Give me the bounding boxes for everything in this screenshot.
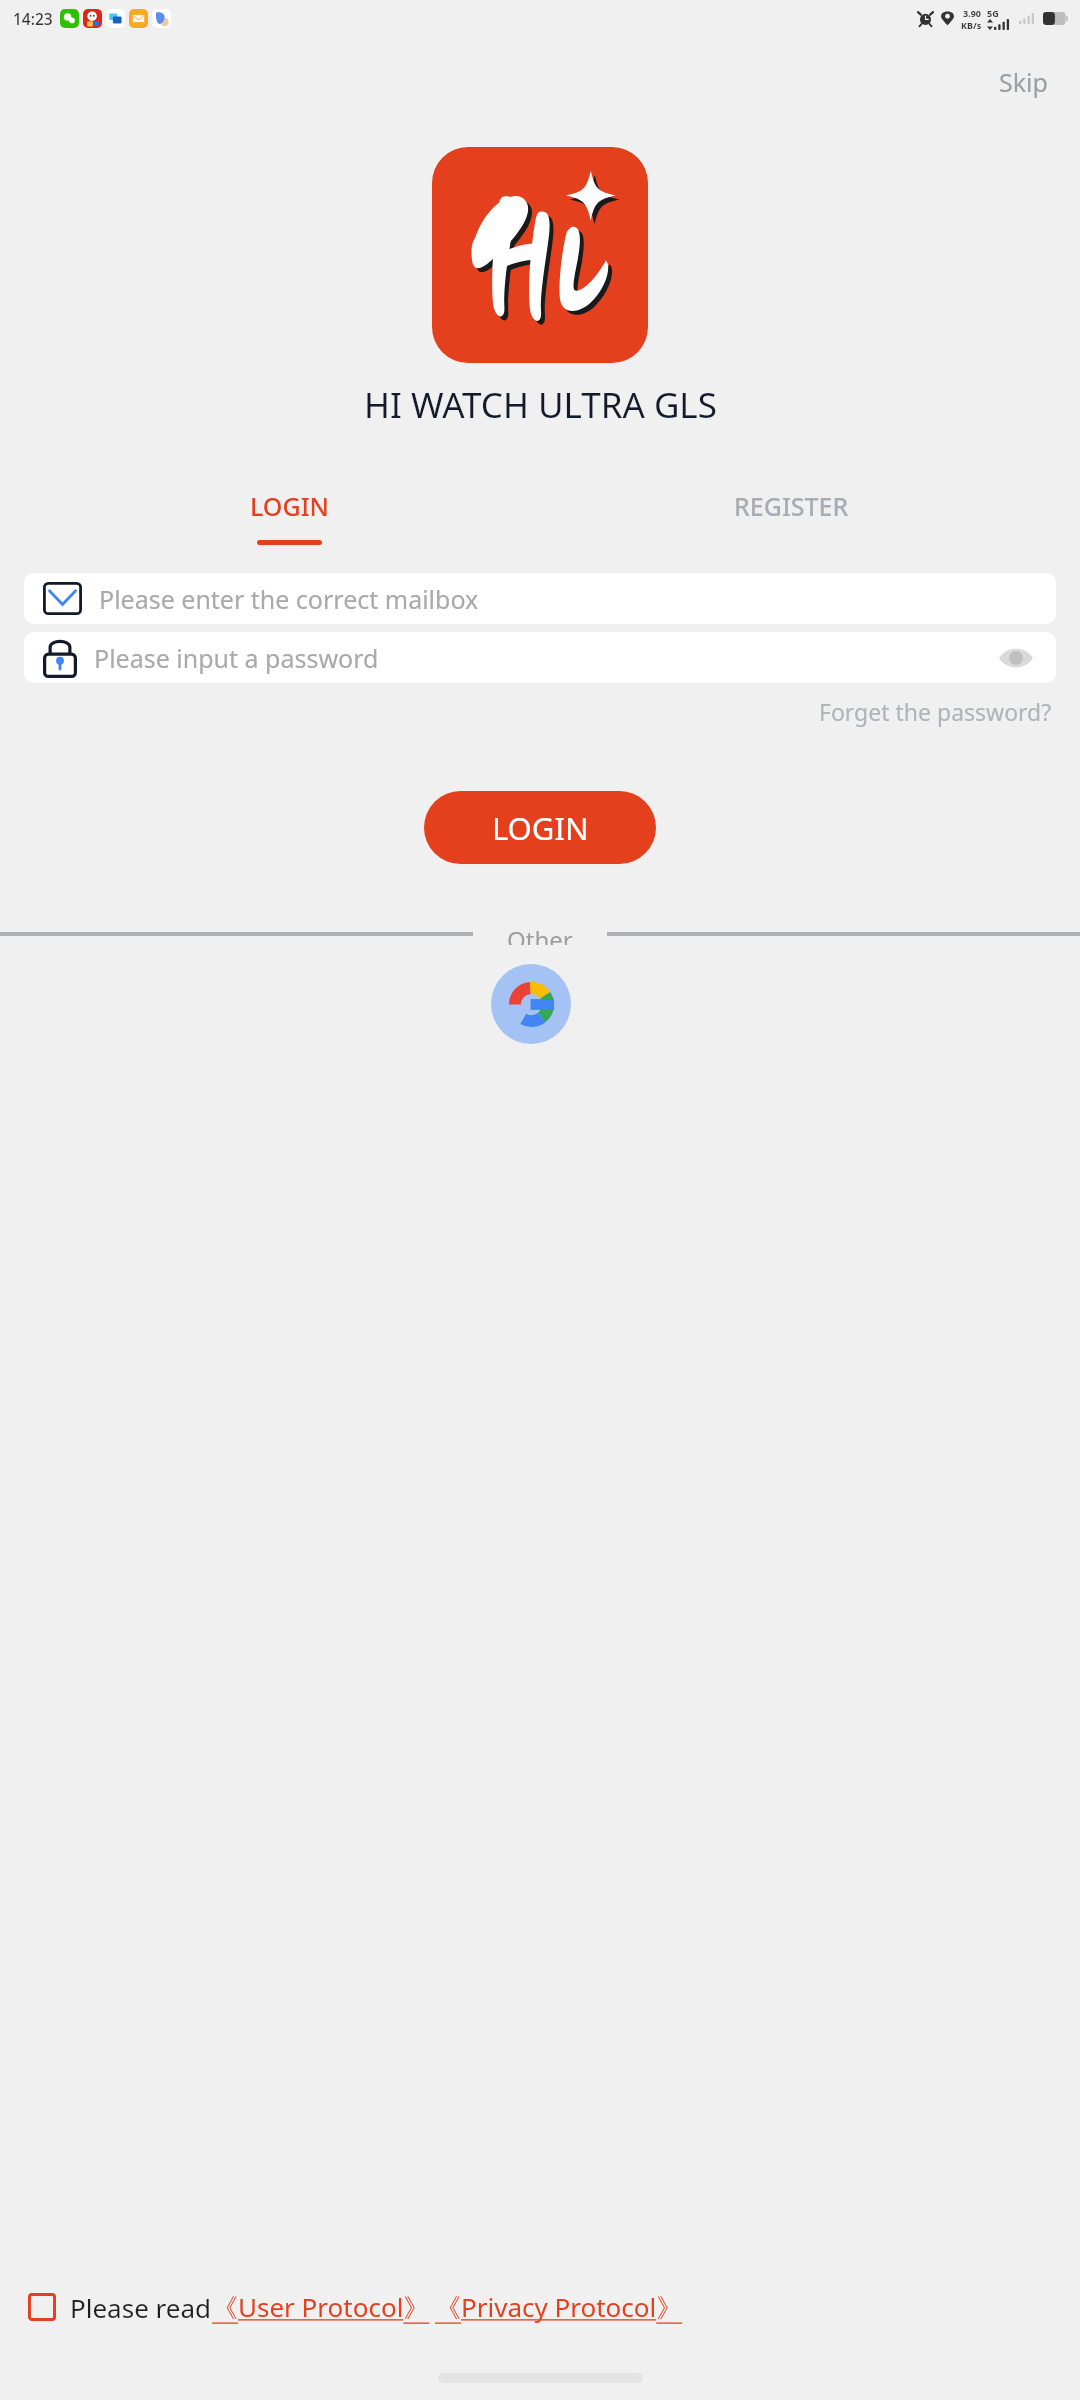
staticText: LOGIN [492,807,589,849]
staticText: Please input a password [94,641,995,675]
button[interactable]: Show password [995,642,1037,674]
button[interactable]: Please input a password [24,632,1056,683]
staticText: REGISTER [734,489,849,523]
staticText: LOGIN [250,489,329,523]
button[interactable]: Forget the password? [815,692,1056,731]
other: Show password [998,645,1034,671]
button[interactable]: REGISTER [540,489,1042,545]
staticText: Please enter the correct mailbox [99,582,479,616]
button[interactable]: Sign in with Google [491,964,571,1044]
staticText: 《Privacy Protocol》 [435,2289,683,2325]
staticText: 14:23 [13,8,53,29]
staticText: Please read [70,2290,212,2325]
staticText: Other [507,923,573,945]
button[interactable]: 《Privacy Protocol》 [435,2289,683,2325]
button[interactable]: Please enter the correct mailbox [24,573,1056,624]
button[interactable]: 《User Protocol》 [212,2289,430,2325]
button[interactable]: LOGIN [424,791,656,864]
button[interactable]: Skip [987,59,1060,105]
staticText: 3.90 [963,7,981,19]
other: Agree checkbox [28,2293,56,2321]
button[interactable]: Agree checkbox [28,2293,56,2321]
staticText: Skip [999,65,1048,99]
staticText: HI WATCH ULTRA GLS [364,381,717,429]
staticText: 《User Protocol》 [212,2289,430,2325]
staticText: 5G [987,7,999,19]
button[interactable]: LOGIN [38,489,540,545]
staticText: Forget the password? [819,696,1052,727]
staticText: KB/s [961,19,982,31]
